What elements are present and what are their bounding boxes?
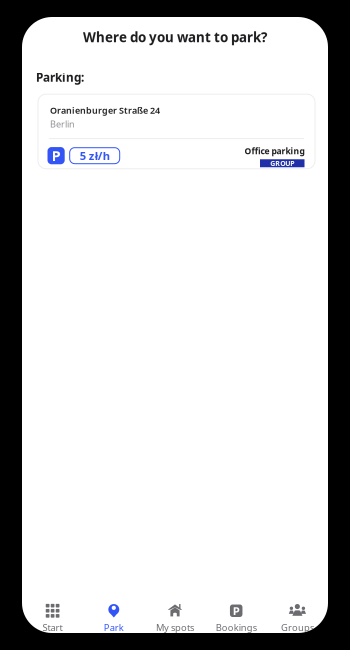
staticText: 5 zł/h	[80, 148, 110, 163]
button[interactable]: My spots	[144, 604, 206, 632]
button[interactable]: Oranienburger Straße 24	[22, 94, 328, 169]
button[interactable]: P	[206, 604, 267, 632]
button[interactable]: Groups	[267, 604, 328, 632]
staticText: Groups	[281, 621, 314, 634]
staticText: GROUP	[270, 159, 294, 168]
staticText: Office parking	[244, 145, 304, 157]
staticText: Parking:	[36, 69, 84, 85]
staticText: Where do you want to park?	[83, 28, 267, 46]
button[interactable]: Start	[22, 604, 83, 632]
staticText: P	[233, 603, 240, 618]
staticText: Park	[104, 621, 124, 634]
staticText: P	[52, 146, 61, 166]
button[interactable]: Park	[83, 604, 144, 632]
staticText: My spots	[156, 621, 194, 634]
staticText: Bookings	[216, 621, 257, 634]
staticText: Start	[43, 621, 63, 634]
staticText: Oranienburger Straße 24	[50, 104, 160, 116]
staticText: Berlin	[50, 118, 75, 130]
